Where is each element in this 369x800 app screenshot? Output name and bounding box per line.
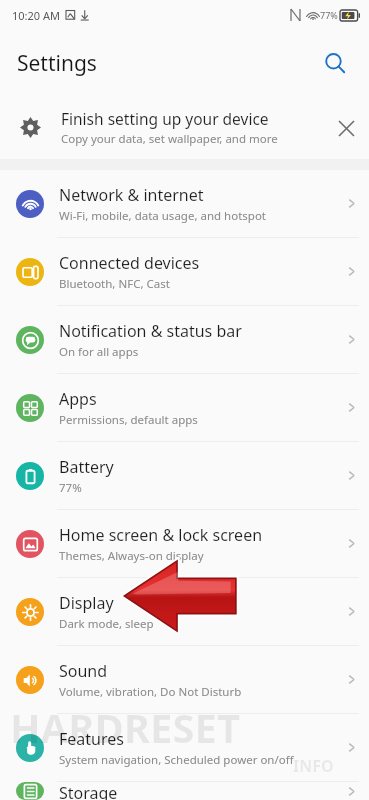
staticText: System navigation, Scheduled power on/of… xyxy=(59,752,294,768)
staticText: Dark mode, sleep xyxy=(59,616,154,632)
staticText: Copy your data, set wallpaper, and more xyxy=(61,131,278,147)
staticText: Features xyxy=(59,728,124,750)
staticText: 77% xyxy=(320,9,338,21)
button[interactable]: Connected devices xyxy=(0,238,369,305)
button[interactable]: Battery xyxy=(0,442,369,509)
staticText: Volume, vibration, Do Not Disturb xyxy=(59,684,242,700)
staticText: Finish setting up your device xyxy=(61,108,269,129)
staticText: Apps xyxy=(59,388,97,410)
staticText: Themes, Always-on display xyxy=(59,548,204,564)
staticText: Battery xyxy=(59,456,114,478)
button[interactable]: Notification & status bar xyxy=(0,306,369,373)
button[interactable]: Sound xyxy=(0,646,369,713)
staticText: Wi-Fi, mobile, data usage, and hotspot xyxy=(59,208,266,224)
button[interactable]: Home screen & lock screen xyxy=(0,510,369,577)
staticText: Network & internet xyxy=(59,184,204,206)
button[interactable]: Display xyxy=(0,578,369,645)
staticText: Storage xyxy=(59,782,118,800)
staticText: Notification & status bar xyxy=(59,320,242,342)
staticText: HARDRESET xyxy=(10,700,240,754)
staticText: Permissions, default apps xyxy=(59,412,198,428)
staticText: Display xyxy=(59,592,114,614)
button[interactable]: Finish setting up your device xyxy=(0,96,369,159)
button[interactable]: Search xyxy=(315,43,355,83)
staticText: 77% xyxy=(59,480,82,496)
staticText: Home screen & lock screen xyxy=(59,524,263,546)
staticText: Sound xyxy=(59,660,108,682)
staticText: INFO xyxy=(293,755,334,777)
button[interactable]: Features xyxy=(0,714,369,781)
button[interactable]: Apps xyxy=(0,374,369,441)
staticText: Settings xyxy=(17,49,97,78)
staticText: 10:20 AM xyxy=(12,8,60,23)
staticText: Bluetooth, NFC, Cast xyxy=(59,276,170,292)
staticText: On for all apps xyxy=(59,344,139,360)
button[interactable]: Network & internet xyxy=(0,170,369,237)
staticText: Connected devices xyxy=(59,252,200,274)
button[interactable]: Storage xyxy=(0,782,369,800)
button[interactable]: Dismiss xyxy=(323,105,369,151)
